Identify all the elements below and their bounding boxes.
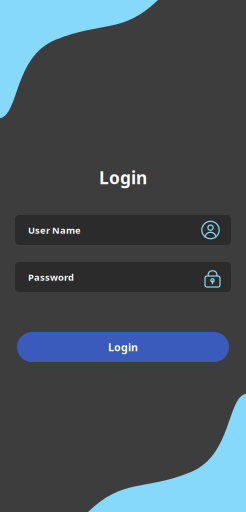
staticText: Login [108,340,138,354]
staticText: Password [28,271,74,283]
button[interactable]: User Name [15,215,231,245]
staticText: Login [99,166,147,189]
staticText: User Name [28,224,81,236]
button[interactable]: Login [17,332,229,362]
button[interactable]: Password [15,262,231,292]
